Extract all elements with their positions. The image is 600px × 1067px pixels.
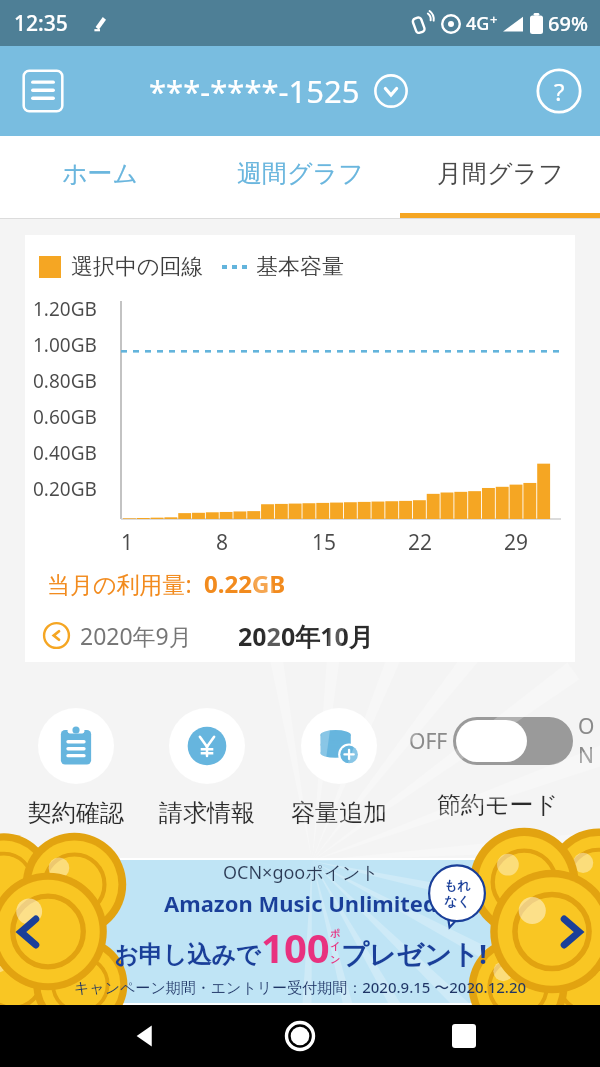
staticText: 月間グラフ [437,158,564,189]
button[interactable]: Next banner [548,909,594,955]
staticText: 69% [548,10,588,37]
staticText: 2020年9月 [80,620,192,651]
button[interactable]: Recent apps [440,1012,488,1060]
staticText: 15 [312,528,337,557]
staticText: OFF [409,727,448,756]
staticText: 週間グラフ [237,158,364,189]
staticText: キャンペーン期間・エントリー受付期間：2020.9.15 〜2020.12.20 [74,977,527,997]
staticText: 0.60GB [33,404,97,430]
staticText: 12:35 [14,9,68,38]
button[interactable]: 容量追加 [273,708,405,828]
staticText: ***-****-1525 [149,70,360,112]
staticText: 選択中の回線 [71,253,204,281]
staticText: イ [330,940,341,953]
staticText: ホーム [62,158,139,189]
button[interactable]: Previous banner [6,909,52,955]
button[interactable]: 月間グラフ [400,136,600,218]
staticText: 0.20GB [33,476,97,502]
staticText: 1.20GB [33,296,97,322]
button[interactable]: OCN×gooポイント [0,858,600,1005]
staticText: 0.22GB [204,567,286,600]
staticText: もれ [444,877,471,893]
staticText: プレゼント! [341,935,487,972]
button[interactable]: Menu [18,66,68,116]
staticText: 当月の利用量: [47,568,192,599]
staticText: 1 [121,528,134,557]
staticText: なく [444,893,471,909]
staticText: 節約モード [437,790,559,820]
staticText: 0.40GB [33,440,97,466]
staticText: 8 [216,528,229,557]
staticText: ポ [330,927,341,940]
button[interactable]: Back [122,1012,170,1060]
staticText: 1.00GB [33,332,97,358]
staticText: ON [578,712,586,770]
button[interactable]: 請求情報 [141,708,273,828]
button[interactable]: Home [276,1012,324,1060]
button[interactable]: ホーム [0,136,200,218]
staticText: 2020年10月 [238,619,374,653]
staticText: 100 [261,920,330,974]
staticText: 0.80GB [33,368,97,394]
button[interactable]: 契約確認 [10,708,141,828]
button[interactable]: ***-****-1525 [145,66,412,116]
staticText: 容量追加 [291,798,387,828]
staticText: 請求情報 [159,798,255,828]
staticText: Amazon Music Unlimited [164,888,437,918]
button[interactable]: 2020年9月 [25,616,198,655]
button[interactable]: OFF [405,708,590,774]
staticText: 29 [504,528,529,557]
staticText: ン [330,953,341,966]
staticText: お申し込みで [114,940,261,970]
staticText: 22 [408,528,433,557]
staticText: ? [554,75,565,108]
staticText: 契約確認 [28,798,124,828]
button[interactable]: Help [536,68,582,114]
button[interactable]: 週間グラフ [200,136,400,218]
staticText: OCN×gooポイント [223,860,379,885]
staticText: 4G [466,11,490,36]
staticText: + [490,10,498,28]
staticText: 基本容量 [256,253,344,281]
